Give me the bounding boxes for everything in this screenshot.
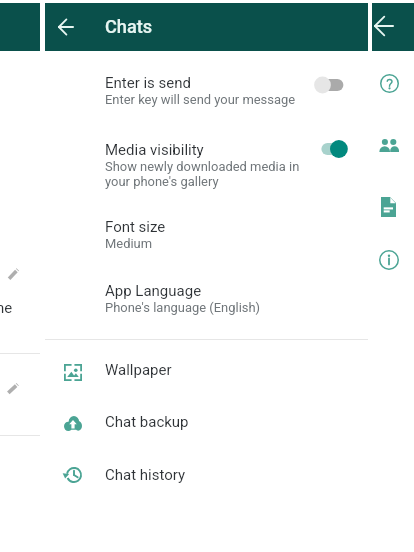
button[interactable]: Chat history [45, 449, 368, 501]
button[interactable]: Enter is send [45, 74, 368, 111]
staticText: your phone's gallery [105, 174, 219, 189]
staticText: Show newly downloaded media in [105, 159, 300, 174]
staticText: Media visibility [105, 141, 204, 159]
staticText: Phone's language (English) [105, 300, 261, 315]
button[interactable]: Enter is send [308, 71, 352, 99]
staticText: Font size [105, 218, 166, 236]
staticText: Wallpaper [105, 361, 172, 379]
button[interactable]: Document [371, 190, 405, 224]
button[interactable]: Info [372, 243, 406, 277]
button[interactable]: Back [49, 10, 83, 44]
button[interactable]: Contacts [372, 128, 406, 162]
button[interactable]: Help [372, 66, 406, 100]
button[interactable]: App Language [45, 282, 368, 319]
staticText: ne [0, 299, 13, 317]
staticText: Enter is send [105, 74, 192, 92]
staticText: Medium [105, 236, 153, 251]
staticText: App Language [105, 282, 202, 300]
staticText: Enter key will send your message [105, 92, 296, 107]
button[interactable]: Font size [45, 218, 368, 255]
button[interactable]: Media visibility [308, 135, 352, 163]
button[interactable]: Wallpaper [45, 344, 368, 396]
staticText: Chat history [105, 466, 186, 484]
button[interactable]: Media visibility [45, 141, 368, 193]
staticText: Chats [105, 16, 153, 37]
button[interactable]: Chat backup [45, 396, 368, 448]
staticText: Chat backup [105, 413, 189, 431]
